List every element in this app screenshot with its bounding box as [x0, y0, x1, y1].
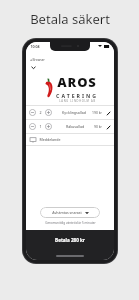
button[interactable]: Decrease	[26, 106, 114, 119]
staticText: 10:04	[30, 44, 40, 49]
button[interactable]: Increase	[45, 109, 52, 116]
button[interactable]: Decrease	[29, 123, 36, 130]
staticText: AROS	[57, 73, 97, 91]
staticText: 90 kr	[94, 124, 102, 129]
staticText: 190 kr	[92, 110, 102, 115]
button[interactable]: Decrease	[26, 120, 114, 133]
button[interactable]: Edit	[105, 110, 111, 116]
button[interactable]: Expand	[30, 64, 37, 71]
button[interactable]: Edit	[105, 124, 111, 130]
staticText: Avhämtas snarast	[52, 210, 82, 215]
staticText: Råkusallad	[56, 124, 94, 129]
staticText: Genomsnittlig väntetid är 5 minuter	[45, 221, 96, 225]
staticText: 2	[39, 110, 42, 115]
button[interactable]: Betala 280 kr	[26, 230, 114, 260]
staticText: 1	[39, 124, 42, 129]
staticText: LANG LINDHOLM AB	[59, 99, 96, 103]
button[interactable]: Decrease	[29, 109, 36, 116]
staticText: Betala säkert	[30, 10, 110, 28]
staticText: Meddelande	[39, 137, 61, 142]
staticText: Betala 280 kr	[55, 237, 85, 243]
staticText: ◂ Browser	[30, 58, 45, 62]
staticText: Kycklingsallad	[56, 110, 92, 115]
button[interactable]: Increase	[45, 123, 52, 130]
button[interactable]: Avhämtas snarast	[40, 207, 100, 218]
staticText: CATERING	[56, 92, 98, 99]
button[interactable]: Meddelande	[26, 134, 114, 145]
